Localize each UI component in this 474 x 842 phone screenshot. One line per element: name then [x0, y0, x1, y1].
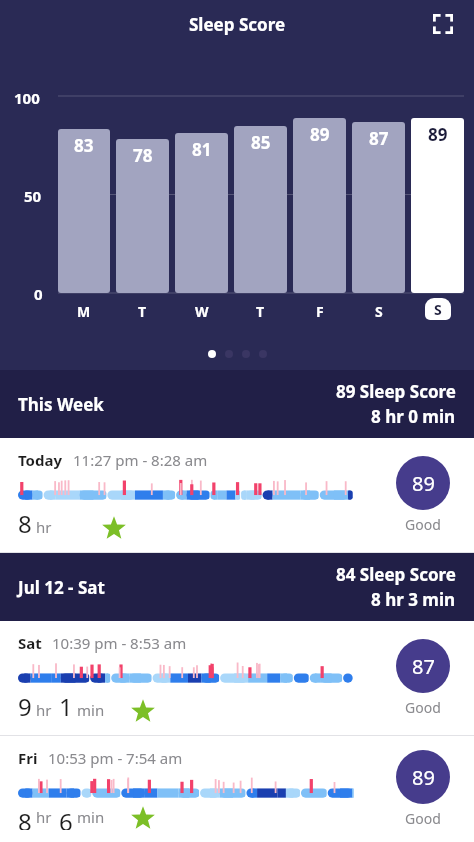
- staticText: 9: [18, 690, 32, 723]
- button[interactable]: 87: [352, 80, 405, 320]
- staticText: min: [77, 700, 105, 720]
- staticText: 89: [412, 470, 435, 497]
- staticText: hr: [36, 807, 52, 827]
- staticText: This Week: [18, 393, 336, 416]
- staticText: 6: [59, 805, 73, 830]
- staticText: S: [375, 302, 383, 320]
- staticText: 89: [428, 123, 448, 146]
- staticText: Sat: [18, 633, 42, 653]
- staticText: S: [434, 300, 442, 319]
- button[interactable]: This Week: [0, 370, 474, 438]
- staticText: 11:27 pm - 8:28 am: [73, 450, 208, 470]
- staticText: hr: [36, 517, 52, 537]
- staticText: 87: [369, 127, 389, 150]
- staticText: M: [77, 302, 91, 320]
- button[interactable]: 81: [175, 80, 228, 320]
- button[interactable]: 83: [58, 80, 110, 320]
- staticText: 8: [18, 805, 32, 830]
- staticText: Good: [405, 809, 441, 828]
- staticText: 83: [74, 134, 94, 157]
- staticText: Today: [18, 450, 63, 470]
- staticText: 50: [24, 186, 42, 206]
- staticText: 89 Sleep Score: [336, 380, 456, 403]
- staticText: T: [138, 302, 147, 320]
- staticText: W: [195, 302, 209, 320]
- staticText: T: [256, 302, 265, 320]
- staticText: Good: [405, 515, 441, 534]
- staticText: 85: [251, 131, 271, 154]
- button[interactable]: Fri: [0, 736, 474, 842]
- button[interactable]: 85: [234, 80, 287, 320]
- staticText: 87: [412, 653, 435, 680]
- staticText: 78: [133, 144, 153, 167]
- staticText: hr: [36, 700, 52, 720]
- staticText: 8: [18, 507, 32, 540]
- staticText: 89: [412, 764, 435, 791]
- staticText: Good: [405, 698, 441, 717]
- staticText: F: [316, 302, 324, 320]
- staticText: 8 hr 0 min: [371, 405, 456, 428]
- staticText: Fri: [18, 748, 38, 768]
- button[interactable]: 78: [116, 80, 169, 320]
- staticText: 89: [310, 123, 330, 146]
- staticText: 1: [59, 690, 73, 723]
- button[interactable]: 89: [293, 80, 346, 320]
- staticText: Sleep Score: [189, 13, 286, 36]
- staticText: min: [77, 807, 105, 827]
- button[interactable]: Jul 12 - Sat: [0, 553, 474, 621]
- staticText: 10:53 pm - 7:54 am: [48, 748, 183, 768]
- staticText: 0: [34, 284, 43, 304]
- staticText: 8 hr 3 min: [371, 588, 456, 611]
- staticText: 84 Sleep Score: [336, 563, 456, 586]
- staticText: Jul 12 - Sat: [18, 576, 336, 599]
- button[interactable]: Today: [0, 438, 474, 552]
- button[interactable]: Expand chart: [426, 7, 460, 41]
- staticText: 10:39 pm - 8:53 am: [52, 633, 187, 653]
- button[interactable]: Sat: [0, 621, 474, 735]
- button[interactable]: 89: [411, 80, 464, 320]
- staticText: 81: [192, 138, 212, 161]
- staticText: 100: [14, 88, 40, 108]
